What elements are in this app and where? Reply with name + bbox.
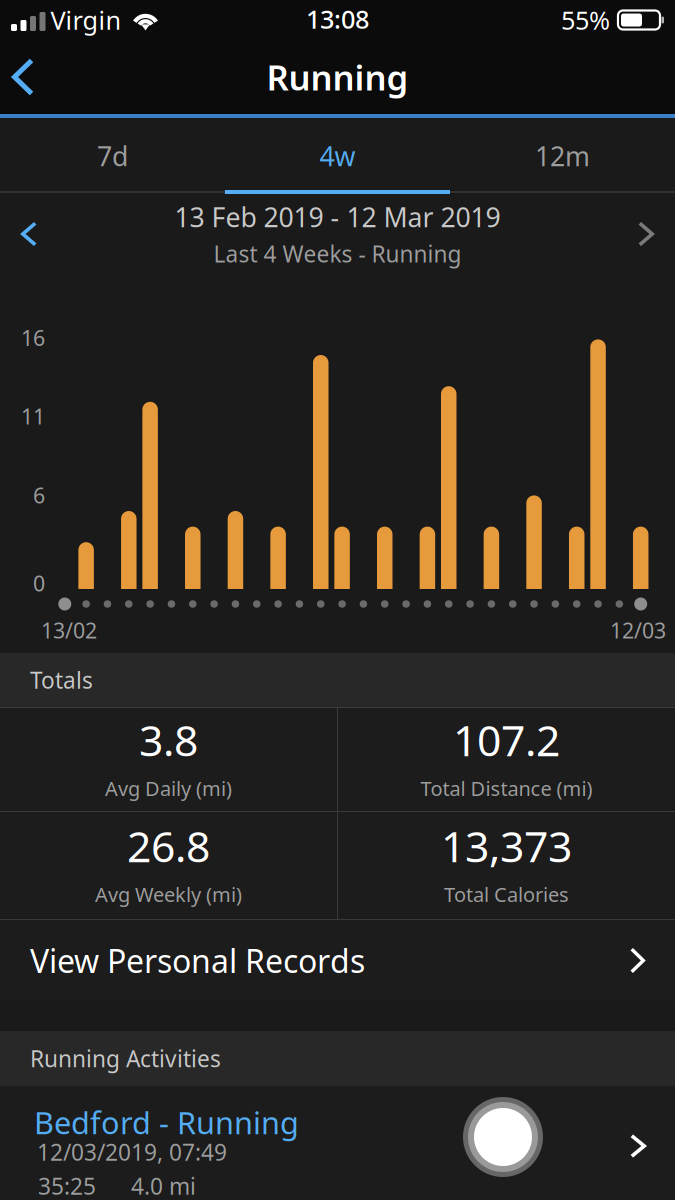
button[interactable]: 7d: [0, 118, 225, 194]
staticText: 6: [33, 481, 45, 509]
staticText: 12/03/2019, 07:49: [37, 1137, 227, 1167]
staticText: 12/03: [610, 616, 666, 644]
staticText: Running Activities: [30, 1043, 221, 1073]
staticText: 4.0 mi: [131, 1171, 196, 1200]
staticText: 13,373: [441, 817, 572, 874]
staticText: View Personal Records: [30, 939, 365, 982]
staticText: 11: [21, 402, 45, 430]
staticText: 7d: [97, 138, 128, 174]
staticText: 12m: [535, 138, 590, 174]
staticText: 13/02: [41, 616, 97, 644]
button[interactable]: 4w: [225, 118, 450, 194]
staticText: Running: [266, 54, 408, 100]
staticText: 13:08: [306, 2, 369, 36]
staticText: Avg Weekly (mi): [95, 881, 242, 908]
staticText: Totals: [30, 665, 93, 695]
staticText: Total Calories: [444, 881, 569, 908]
button[interactable]: Back: [0, 44, 46, 110]
button[interactable]: View Personal Records: [0, 920, 675, 1001]
button[interactable]: Previous period: [0, 205, 58, 262]
staticText: Total Distance (mi): [420, 775, 592, 802]
staticText: Avg Daily (mi): [105, 775, 232, 802]
staticText: 0: [33, 569, 45, 597]
staticText: 13 Feb 2019 - 12 Mar 2019: [174, 199, 500, 235]
staticText: Last 4 Weeks - Running: [213, 239, 461, 269]
button[interactable]: Bedford - Running: [0, 1086, 675, 1200]
staticText: Virgin: [50, 3, 121, 37]
staticText: 55%: [561, 3, 610, 37]
staticText: 4w: [319, 138, 355, 174]
staticText: 26.8: [127, 817, 210, 874]
staticText: 35:25: [38, 1171, 96, 1200]
button[interactable]: Next period: [617, 205, 675, 262]
button[interactable]: 12m: [450, 118, 675, 194]
staticText: 3.8: [139, 711, 198, 768]
staticText: 107.2: [453, 711, 560, 768]
staticText: 16: [21, 323, 45, 352]
staticText: Bedford - Running: [34, 1102, 299, 1143]
